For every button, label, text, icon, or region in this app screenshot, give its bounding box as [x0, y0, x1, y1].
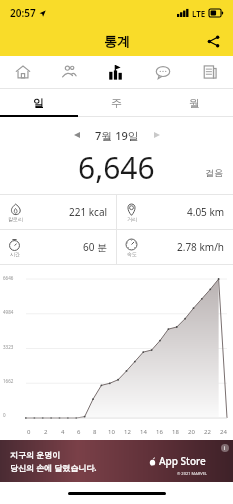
staticText: 6: [77, 428, 81, 436]
staticText: 4: [61, 428, 65, 436]
staticText: 일: [33, 96, 44, 110]
staticText: 24: [220, 428, 227, 436]
button[interactable]: 거리: [117, 195, 233, 229]
staticText: 걸음: [205, 167, 223, 178]
staticText: LTE: [192, 8, 206, 19]
staticText: 7월 19일: [95, 128, 139, 143]
staticText: 2.78 km/h: [177, 240, 225, 254]
button[interactable]: News: [186, 56, 233, 88]
button[interactable]: 시간: [0, 230, 116, 264]
staticText: 6646: [3, 275, 14, 281]
staticText: 6,646: [78, 147, 155, 188]
button[interactable]: 지구의 운명이: [0, 440, 233, 482]
staticText: 10: [108, 428, 115, 436]
staticText: © 2021 MARVEL: [177, 471, 207, 476]
staticText: App Store: [159, 454, 206, 468]
staticText: 0: [3, 412, 6, 418]
staticText: 4984: [3, 309, 14, 315]
button[interactable]: 일: [0, 89, 77, 117]
staticText: 3323: [3, 344, 14, 350]
staticText: 8: [93, 428, 97, 436]
staticText: 60 분: [83, 240, 108, 254]
staticText: 20:57: [10, 6, 36, 20]
staticText: 18: [172, 428, 179, 436]
staticText: 2: [44, 428, 48, 436]
button[interactable]: Friends: [46, 56, 92, 88]
staticText: 12: [124, 428, 131, 436]
staticText: i: [224, 445, 226, 452]
button[interactable]: 속도: [117, 230, 233, 264]
button[interactable]: Ad info: [221, 444, 229, 452]
button[interactable]: 월: [155, 89, 233, 117]
staticText: 1662: [3, 378, 14, 384]
staticText: 당신의 손에 달렸습니다.: [10, 462, 97, 473]
staticText: 221 kcal: [69, 205, 108, 219]
staticText: 시간: [10, 251, 20, 257]
staticText: 0: [27, 428, 31, 436]
staticText: 22: [204, 428, 211, 436]
staticText: 지구의 운명이: [10, 449, 61, 460]
staticText: 칼로리: [8, 216, 23, 222]
staticText: 16: [156, 428, 163, 436]
staticText: 월: [189, 96, 200, 110]
staticText: 주: [111, 96, 122, 110]
staticText: 속도: [127, 251, 137, 257]
button[interactable]: Home: [0, 56, 46, 88]
staticText: 거리: [127, 216, 137, 222]
button[interactable]: Share: [201, 29, 225, 53]
staticText: 통계: [104, 33, 130, 49]
button[interactable]: 주: [77, 89, 155, 117]
button[interactable]: Next day: [147, 125, 167, 145]
button[interactable]: Statistics: [92, 56, 139, 88]
button[interactable]: 칼로리: [0, 195, 116, 229]
staticText: 14: [140, 428, 147, 436]
staticText: 20: [188, 428, 195, 436]
staticText: 4.05 km: [187, 205, 225, 219]
button[interactable]: Chat: [139, 56, 186, 88]
button[interactable]: Previous day: [67, 125, 87, 145]
